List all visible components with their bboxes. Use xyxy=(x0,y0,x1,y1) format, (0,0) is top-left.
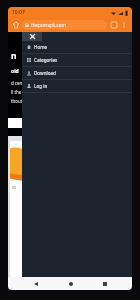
staticText: Categories xyxy=(34,57,58,63)
button[interactable]: XX xyxy=(10,141,39,277)
staticText: Home xyxy=(34,44,48,50)
button[interactable]: More options xyxy=(119,20,129,30)
staticText: n xyxy=(11,50,17,62)
button[interactable]: theporrapk.com xyxy=(22,20,107,30)
staticText: d center xyxy=(11,80,29,86)
button[interactable]: Log in xyxy=(22,80,132,92)
button[interactable]: Home xyxy=(11,20,21,30)
staticText: Download xyxy=(34,70,56,76)
staticText: Log in xyxy=(34,83,48,89)
staticText: ll the xyxy=(11,89,22,95)
staticText: theporrapk.com xyxy=(31,22,66,28)
staticText: XX xyxy=(12,185,17,190)
button[interactable]: Categories xyxy=(22,54,132,66)
button[interactable]: Home xyxy=(22,41,132,53)
staticText: thout xyxy=(11,98,23,104)
button[interactable]: Home xyxy=(64,277,77,290)
button[interactable]: Close menu xyxy=(22,32,42,41)
button[interactable]: Search xyxy=(8,116,42,129)
staticText: 10:07 xyxy=(12,9,25,16)
button[interactable]: Tabs xyxy=(109,20,119,30)
button[interactable]: Back xyxy=(29,277,42,290)
staticText: oid xyxy=(11,68,19,75)
button[interactable]: Recent apps xyxy=(98,277,111,290)
button[interactable]: Download xyxy=(22,67,132,79)
